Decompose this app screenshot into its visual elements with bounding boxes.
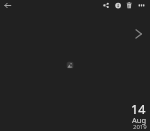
button[interactable]: Share xyxy=(100,0,112,12)
button[interactable]: Back xyxy=(2,0,14,12)
button[interactable]: Delete xyxy=(124,0,136,12)
button[interactable]: 14 xyxy=(128,101,148,131)
staticText: 2019 xyxy=(133,123,147,131)
button[interactable]: Info xyxy=(112,0,124,12)
button[interactable]: More options xyxy=(136,0,148,12)
staticText: 14 xyxy=(131,101,146,118)
staticText: Aug xyxy=(132,115,147,125)
button[interactable]: Next photo xyxy=(130,26,146,42)
